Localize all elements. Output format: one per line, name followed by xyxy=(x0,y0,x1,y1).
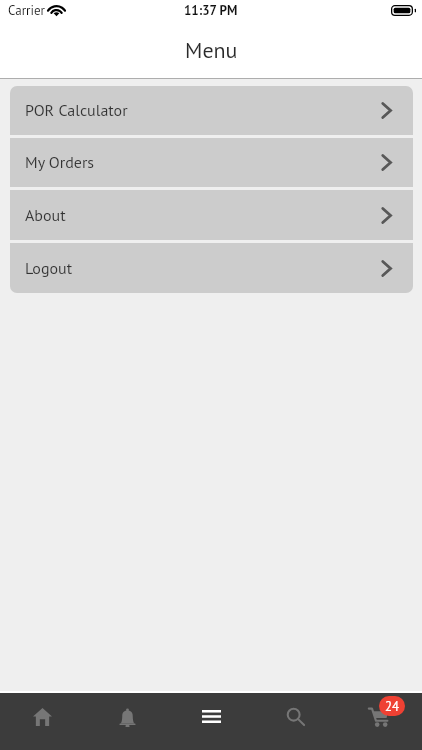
button[interactable]: Home xyxy=(0,693,85,750)
button[interactable]: Cart, 24 items xyxy=(338,693,422,750)
staticText: My Orders xyxy=(25,152,95,173)
staticText: 11:37 PM xyxy=(184,2,238,19)
button[interactable]: My Orders xyxy=(10,138,413,187)
button[interactable]: Notifications xyxy=(85,693,170,750)
button[interactable]: Logout xyxy=(10,243,413,293)
button[interactable]: Menu xyxy=(170,693,254,750)
staticText: POR Calculator xyxy=(25,100,128,121)
staticText: Logout xyxy=(25,258,73,279)
staticText: About xyxy=(25,205,66,226)
staticText: 24 xyxy=(385,698,400,715)
button[interactable]: About xyxy=(10,190,413,240)
button[interactable]: Search xyxy=(254,693,338,750)
button[interactable]: POR Calculator xyxy=(10,86,413,135)
staticText: Menu xyxy=(185,36,238,64)
staticText: Carrier xyxy=(8,2,45,19)
